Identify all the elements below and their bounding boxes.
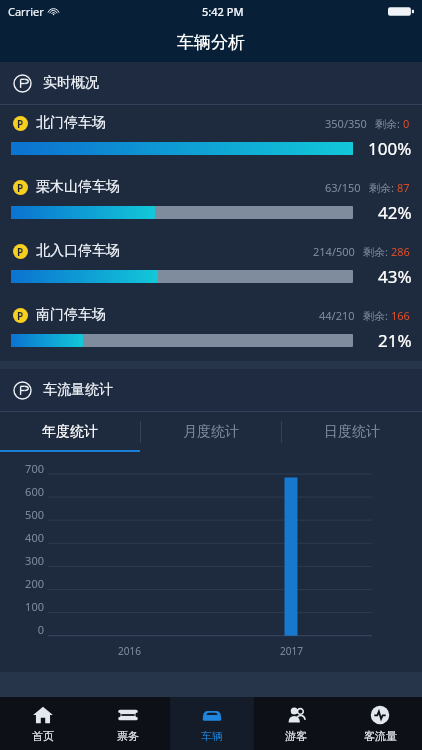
staticText: 350/350 (325, 116, 367, 131)
staticText: 剩余: (375, 116, 400, 131)
button[interactable]: 实时概况 (0, 62, 422, 104)
staticText: 首页 (32, 729, 54, 743)
button[interactable]: P (0, 297, 422, 361)
staticText: P (17, 181, 24, 195)
staticText: P (17, 309, 24, 323)
staticText: 年度统计 (42, 423, 98, 441)
staticText: 车辆分析 (177, 32, 245, 53)
staticText: 400 (25, 530, 44, 545)
staticText: 200 (25, 576, 44, 591)
staticText: 214/500 (313, 244, 355, 259)
staticText: 2016 (118, 644, 141, 658)
staticText: 500 (25, 507, 44, 522)
button[interactable]: P (0, 233, 422, 297)
staticText: 实时概况 (43, 74, 99, 92)
button[interactable]: P (0, 169, 422, 233)
staticText: 100 (25, 599, 44, 614)
button[interactable]: 日度统计 (282, 412, 422, 452)
staticText: 700 (25, 461, 44, 476)
staticText: 游客 (285, 729, 307, 743)
staticText: 日度统计 (324, 423, 380, 441)
staticText: 月度统计 (183, 423, 239, 441)
staticText: 北入口停车场 (36, 242, 120, 260)
staticText: 166 (391, 308, 410, 323)
staticText: 43% (378, 265, 412, 288)
button[interactable]: 车辆 (170, 697, 254, 750)
staticText: 栗木山停车场 (36, 178, 120, 196)
staticText: 63/150 (325, 180, 361, 195)
staticText: 286 (391, 244, 410, 259)
staticText: 100% (368, 137, 412, 160)
staticText: P (17, 117, 24, 131)
staticText: 42% (378, 201, 412, 224)
button[interactable]: 月度统计 (141, 412, 281, 452)
staticText: 剩余: (369, 180, 394, 195)
staticText: 0 (403, 116, 410, 131)
staticText: 车辆 (201, 729, 223, 743)
staticText: 0 (37, 622, 44, 637)
staticText: 600 (25, 484, 44, 499)
staticText: 车流量统计 (43, 381, 113, 399)
button[interactable]: 车流量统计 (0, 369, 422, 411)
staticText: 21% (378, 329, 412, 352)
staticText: 北门停车场 (36, 114, 106, 132)
staticText: Carrier (8, 4, 44, 19)
staticText: 44/210 (319, 308, 355, 323)
staticText: 票务 (117, 729, 139, 743)
button[interactable]: 客流量 (338, 697, 422, 750)
button[interactable]: 游客 (254, 697, 338, 750)
staticText: 剩余: (363, 308, 388, 323)
button[interactable]: 票务 (85, 697, 170, 750)
staticText: 300 (25, 553, 44, 568)
staticText: 剩余: (363, 244, 388, 259)
staticText: P (17, 245, 24, 259)
staticText: 2017 (280, 644, 303, 658)
button[interactable]: 年度统计 (0, 412, 140, 452)
staticText: 南门停车场 (36, 306, 106, 324)
staticText: 5:42 PM (202, 4, 244, 19)
staticText: 87 (397, 180, 410, 195)
button[interactable]: P (0, 105, 422, 169)
button[interactable]: 首页 (0, 697, 85, 750)
staticText: 客流量 (364, 729, 397, 743)
